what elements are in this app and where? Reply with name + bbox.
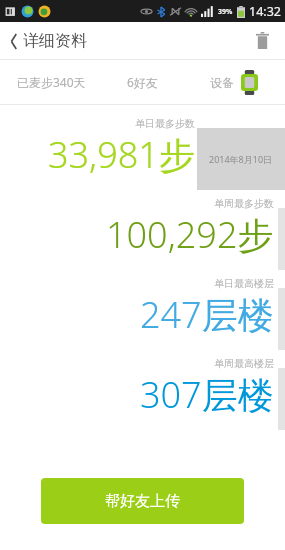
staticText: 单周最多步数 — [214, 197, 274, 210]
staticText: 33,981步 — [48, 130, 195, 179]
button[interactable]: 删除 — [250, 26, 275, 55]
button[interactable]: 帮好友上传 — [41, 478, 244, 524]
staticText: 已麦步340天 — [17, 74, 86, 90]
staticText: 详细资料 — [23, 31, 87, 51]
button[interactable]: 6好友 — [102, 60, 183, 104]
staticText: 247层楼 — [140, 290, 274, 339]
staticText: 设备 — [210, 75, 234, 90]
staticText: 帮好友上传 — [105, 492, 180, 511]
staticText: 39% — [218, 7, 233, 17]
staticText: 14:32 — [249, 3, 281, 20]
staticText: 6好友 — [127, 74, 158, 90]
staticText: 单日最多步数 — [135, 117, 195, 130]
staticText: 单日最高楼层 — [214, 277, 274, 290]
button[interactable]: 设备 — [183, 60, 285, 104]
button[interactable]: 已麦步340天 — [0, 60, 102, 104]
staticText: 2014年8月10日 — [209, 153, 273, 165]
button[interactable]: 返回 — [6, 27, 91, 55]
staticText: 单周最高楼层 — [214, 357, 274, 370]
button[interactable]: 2014年8月10日 — [197, 128, 285, 190]
staticText: 307层楼 — [140, 370, 274, 419]
staticText: 100,292步 — [106, 210, 274, 259]
